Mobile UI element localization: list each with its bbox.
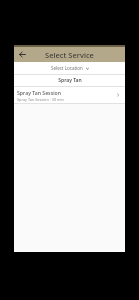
button[interactable]: Back — [16, 48, 29, 61]
button[interactable]: Spray Tan Session — [14, 87, 125, 103]
staticText: Spray Tan — [58, 77, 82, 84]
staticText: Spray Tan Session · 30 min — [17, 97, 64, 102]
other: Open service details — [114, 91, 122, 99]
staticText: Spray Tan Session — [17, 89, 61, 96]
staticText: Select Service — [45, 50, 94, 60]
button[interactable]: Select Location — [14, 62, 125, 74]
staticText: Select Location — [51, 65, 83, 71]
